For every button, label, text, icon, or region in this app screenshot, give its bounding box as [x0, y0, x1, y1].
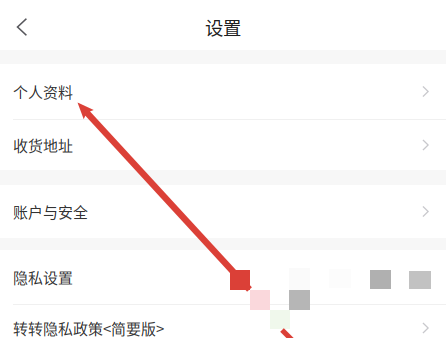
button[interactable]: 转转隐私政策<简要版>: [0, 305, 446, 338]
staticText: 个人资料: [13, 81, 73, 102]
staticText: 收货地址: [13, 134, 73, 156]
staticText: 转转隐私政策<简要版>: [13, 317, 164, 338]
button[interactable]: 收货地址: [0, 120, 446, 170]
staticText: 设置: [205, 14, 241, 40]
button[interactable]: Back: [0, 0, 41, 50]
button[interactable]: 个人资料: [0, 64, 446, 119]
button[interactable]: 隐私设置: [0, 250, 446, 304]
button[interactable]: 账户与安全: [0, 185, 446, 238]
staticText: 账户与安全: [13, 201, 88, 222]
staticText: 隐私设置: [13, 266, 73, 288]
